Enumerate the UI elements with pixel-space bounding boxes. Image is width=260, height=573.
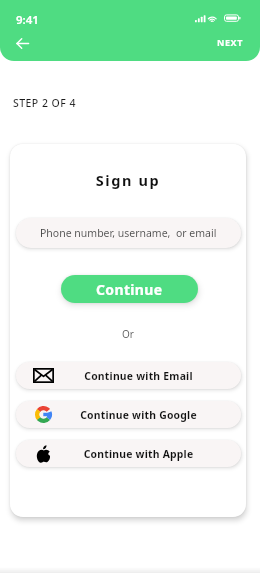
staticText: Continue with Apple — [60, 447, 217, 461]
button[interactable]: NEXT — [214, 34, 246, 50]
staticText: Continue with Google — [60, 408, 217, 422]
button[interactable]: Continue with Google — [16, 401, 241, 428]
button[interactable]: Continue with Apple — [16, 440, 241, 467]
button[interactable]: Continue — [61, 275, 198, 303]
staticText: STEP 2 OF 4 — [13, 96, 76, 110]
staticText: Continue — [96, 280, 163, 299]
staticText: 9:41 — [16, 12, 39, 28]
staticText: Phone number, username, or email — [40, 226, 217, 240]
button[interactable]: Continue with Email — [16, 362, 241, 389]
button[interactable]: Phone number, username, or email — [16, 218, 241, 248]
button[interactable]: Back — [12, 33, 33, 54]
staticText: Sign up — [10, 170, 246, 190]
staticText: Continue with Email — [60, 369, 217, 383]
staticText: NEXT — [217, 36, 243, 48]
staticText: Or — [10, 327, 246, 341]
